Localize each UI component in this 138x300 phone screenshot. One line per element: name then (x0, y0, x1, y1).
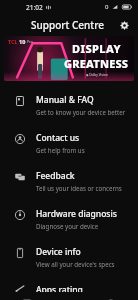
staticText: ◆ Dolby Vision (86, 73, 108, 77)
button[interactable]: Device info (0, 238, 138, 276)
staticText: 10 (19, 38, 26, 45)
button[interactable]: Manual & FAQ (0, 86, 138, 124)
staticText: Contact us (36, 132, 80, 144)
staticText: Support Centre (31, 18, 104, 32)
button[interactable]: Hardware diagnosis (0, 200, 138, 238)
staticText: Pro (27, 39, 33, 44)
staticText: Apps rating (36, 284, 83, 292)
staticText: Feedback (36, 170, 75, 182)
staticText: Hardware diagnosis (36, 208, 117, 220)
staticText: TCL (8, 38, 18, 45)
button[interactable]: Contact us (0, 124, 138, 162)
button[interactable]: Feedback (0, 162, 138, 200)
staticText: 21:02 (26, 3, 43, 12)
staticText: Manual & FAQ (36, 94, 94, 106)
staticText: GREATNESS (64, 56, 129, 71)
staticText: Get help from us (36, 146, 85, 154)
staticText: 0 (105, 3, 109, 11)
button[interactable]: Settings (116, 17, 132, 33)
staticText: Get to know your device better (36, 108, 126, 116)
staticText: DISPLAY (72, 41, 121, 56)
staticText: Tell us your ideas or concerns (36, 184, 122, 192)
staticText: Device info (36, 246, 81, 258)
staticText: Diagnose your device (36, 222, 99, 230)
button[interactable]: TCL (4, 36, 134, 81)
button[interactable]: Apps rating (0, 276, 138, 300)
staticText: View all your device's specs (36, 260, 115, 268)
